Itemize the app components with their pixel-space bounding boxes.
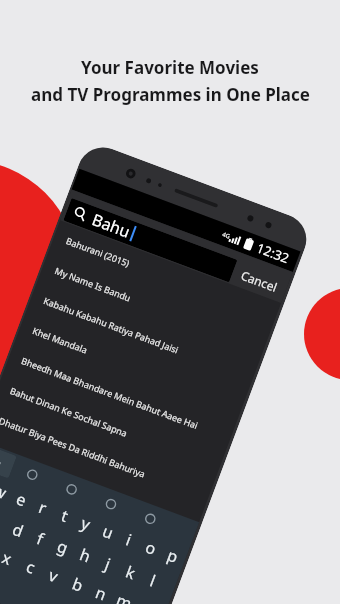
button[interactable]: k — [114, 554, 147, 590]
button[interactable]: g — [46, 529, 79, 565]
button[interactable]: r — [27, 489, 59, 526]
button[interactable]: b — [60, 566, 94, 603]
staticText: Bheedh Maa Bhandare Mein Bahut Aaee Hai — [20, 354, 200, 431]
button[interactable]: Search — [63, 198, 237, 282]
staticText: u — [99, 520, 117, 544]
staticText: b — [69, 572, 86, 597]
staticText: x — [0, 546, 15, 570]
staticText: My Name Is Bandu — [53, 264, 133, 304]
button[interactable]: En — [0, 443, 17, 479]
staticText: w — [0, 479, 10, 504]
button[interactable]: x — [0, 540, 24, 577]
button[interactable]: j — [91, 545, 124, 582]
staticText: and TV Programmes in One Place — [31, 83, 310, 106]
staticText: r — [36, 496, 50, 519]
staticText: 4G — [221, 230, 231, 241]
button[interactable]: c — [13, 548, 47, 585]
staticText: n — [92, 581, 110, 604]
button[interactable]: t — [48, 497, 80, 534]
button[interactable]: My Name Is Bandu — [38, 250, 270, 363]
staticText: e — [13, 488, 30, 512]
button[interactable]: f — [24, 520, 57, 557]
button[interactable]: y — [70, 505, 102, 542]
staticText: Khel Mandala — [31, 324, 89, 356]
button[interactable]: v — [37, 557, 71, 594]
button[interactable]: Bheedh Maa Bhandare Mein Bahut Aaee Hai — [4, 340, 236, 453]
button[interactable]: Dhatur Biya Pees Da Riddhi Bahuriya — [0, 400, 214, 513]
staticText: f — [34, 527, 47, 550]
button[interactable]: i — [113, 522, 145, 558]
staticText: En — [0, 452, 4, 471]
staticText: h — [77, 543, 94, 567]
staticText: p — [164, 544, 181, 568]
button[interactable]: u — [92, 514, 124, 550]
button[interactable]: Kabahu Kabahu Ratiya Pahad Jaisi — [26, 280, 259, 393]
staticText: Dhatur Biya Pees Da Riddhi Bahuriya — [0, 414, 148, 480]
button[interactable]: Bahurani (2015) — [49, 220, 281, 333]
button[interactable]: m — [107, 583, 141, 604]
staticText: Your Favorite Movies — [81, 56, 259, 79]
staticText: Kabahu Kabahu Ratiya Pahad Jaisi — [42, 294, 180, 355]
staticText: t — [58, 504, 72, 527]
button[interactable]: Voice input — [126, 500, 174, 537]
button[interactable]: n — [84, 575, 118, 604]
staticText: Bahu — [89, 208, 134, 243]
button[interactable]: Khel Mandala — [15, 310, 248, 423]
staticText: Bahurani (2015) — [65, 234, 132, 269]
button[interactable]: d — [1, 512, 34, 548]
staticText: d — [9, 518, 26, 542]
staticText: k — [123, 560, 139, 584]
button[interactable]: Translate — [8, 456, 56, 493]
button[interactable]: Bahut Dinan Ke Sochal Sapna — [0, 370, 225, 483]
staticText: o — [143, 536, 160, 560]
staticText: Cancel — [239, 267, 280, 295]
staticText: y — [78, 512, 94, 535]
button[interactable]: Emoji — [48, 471, 95, 508]
staticText: i — [123, 528, 135, 551]
button[interactable]: p — [156, 538, 188, 574]
button[interactable]: Space — [0, 565, 116, 604]
button[interactable]: Clipboard — [87, 485, 135, 523]
button[interactable]: e — [5, 481, 37, 518]
staticText: v — [46, 564, 62, 587]
button[interactable]: l — [136, 562, 169, 599]
staticText: 12:32 — [254, 239, 292, 267]
button[interactable]: Cancel — [230, 264, 289, 298]
button[interactable]: h — [69, 537, 102, 574]
staticText: Bahut Dinan Ke Sochal Sapna — [8, 384, 130, 439]
button[interactable]: w — [0, 473, 16, 509]
staticText: m — [113, 589, 135, 604]
staticText: j — [102, 553, 114, 575]
other: Search — [72, 205, 90, 223]
staticText: c — [23, 555, 38, 579]
staticText: g — [54, 535, 71, 559]
staticText: l — [147, 570, 159, 592]
button[interactable]: o — [135, 530, 167, 566]
